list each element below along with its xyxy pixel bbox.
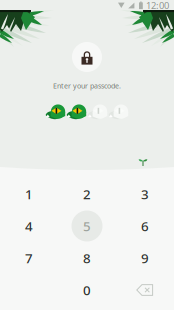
staticText: 9 (141, 249, 149, 267)
button[interactable]: 0 (58, 274, 116, 306)
staticText: 12:00 (146, 0, 169, 12)
staticText: 6 (141, 217, 149, 235)
staticText: 3 (141, 185, 149, 203)
button[interactable]: 9 (116, 242, 174, 274)
staticText: 4 (25, 217, 33, 235)
staticText: 8 (83, 249, 91, 267)
button[interactable]: 3 (116, 178, 174, 210)
staticText: 7 (25, 249, 33, 267)
button[interactable]: Delete (116, 274, 174, 306)
staticText: Enter your passcode. (53, 81, 121, 91)
button[interactable]: 1 (0, 178, 58, 210)
staticText: 2 (83, 185, 91, 203)
button[interactable]: 7 (0, 242, 58, 274)
staticText: 1 (25, 185, 33, 203)
button[interactable]: 8 (58, 242, 116, 274)
staticText: 0 (83, 281, 91, 299)
button[interactable]: 5 (58, 210, 116, 242)
button[interactable]: 2 (58, 178, 116, 210)
button[interactable]: 4 (0, 210, 58, 242)
staticText: 5 (83, 217, 91, 235)
button[interactable]: 6 (116, 210, 174, 242)
